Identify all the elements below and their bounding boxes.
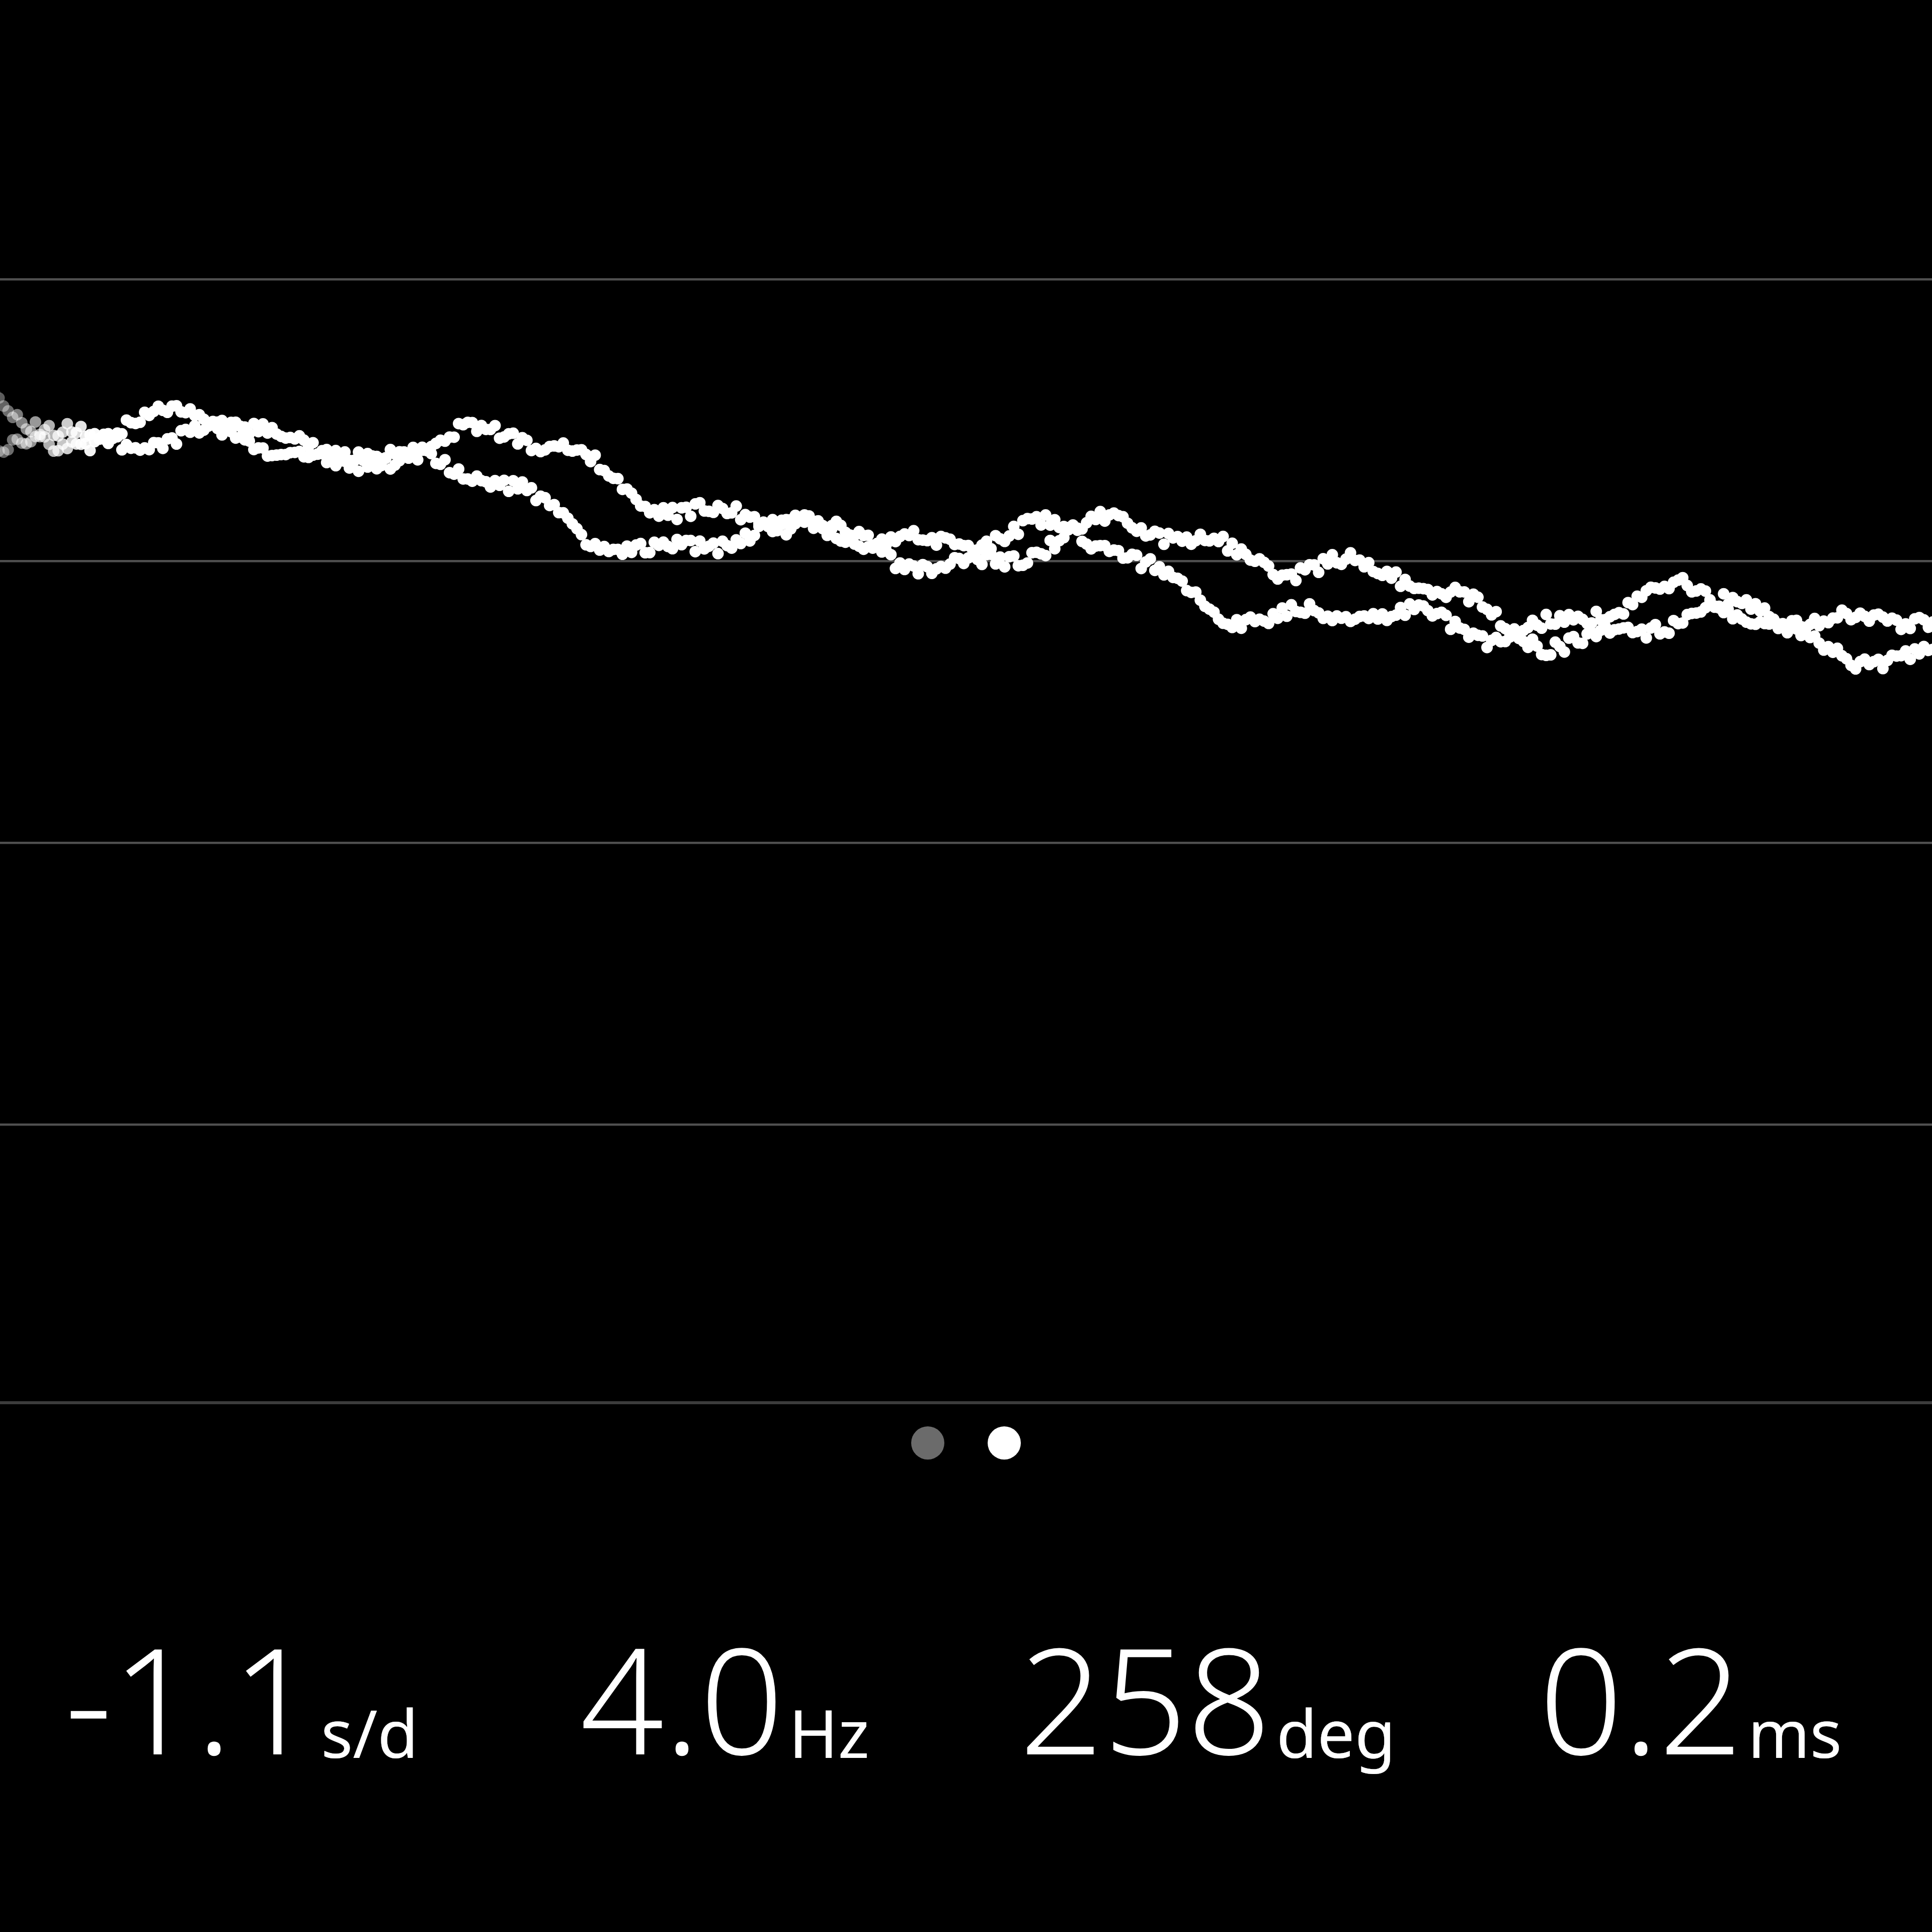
staticText: 258 — [1019, 1597, 1271, 1798]
staticText: 0.2 — [1539, 1597, 1743, 1798]
staticText: 4.0 — [580, 1597, 784, 1798]
staticText: Hz — [789, 1687, 869, 1778]
button[interactable]: Timing trace graph — [0, 0, 1932, 1403]
button[interactable]: Page 2 selected — [988, 1426, 1021, 1460]
button[interactable]: Page 1 — [911, 1426, 944, 1460]
button[interactable]: 0.2 — [1449, 1597, 1932, 1814]
staticText: ms — [1748, 1687, 1842, 1778]
staticText: -1.1 — [65, 1597, 316, 1798]
button[interactable]: 4.0 — [483, 1597, 966, 1814]
button[interactable]: -1.1 — [0, 1597, 483, 1814]
button[interactable]: 258 — [966, 1597, 1449, 1814]
staticText: s/d — [321, 1687, 419, 1778]
staticText: deg — [1276, 1687, 1396, 1778]
